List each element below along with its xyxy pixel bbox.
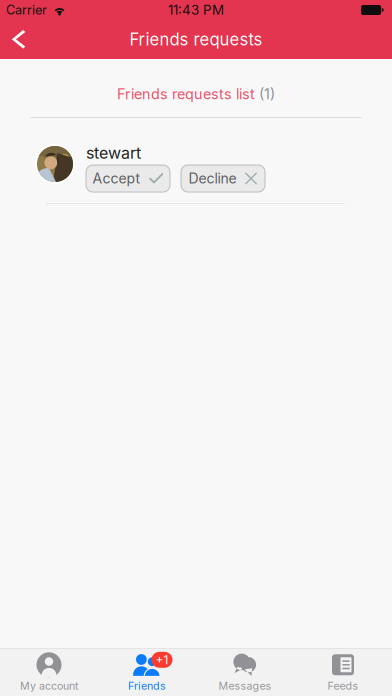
- button[interactable]: +1: [98, 649, 196, 696]
- staticText: Carrier: [6, 2, 47, 18]
- staticText: +1: [155, 652, 168, 667]
- staticText: stewart: [86, 143, 141, 163]
- staticText: Messages: [218, 679, 271, 692]
- staticText: 11:43 PM: [168, 2, 224, 18]
- staticText: Friends requests: [129, 29, 262, 50]
- button[interactable]: Back: [0, 20, 42, 59]
- staticText: My account: [20, 679, 78, 692]
- staticText: Feeds: [327, 679, 358, 692]
- staticText: Friends: [128, 679, 166, 692]
- staticText: Accept: [92, 170, 140, 187]
- button[interactable]: Messages: [196, 649, 294, 696]
- staticText: (1): [259, 85, 275, 103]
- button[interactable]: Feeds: [294, 649, 392, 696]
- button[interactable]: Accept: [86, 165, 170, 192]
- button[interactable]: My account: [0, 649, 98, 696]
- button[interactable]: Decline: [181, 165, 265, 192]
- staticText: Friends requests list: [117, 85, 255, 103]
- staticText: Decline: [188, 170, 236, 187]
